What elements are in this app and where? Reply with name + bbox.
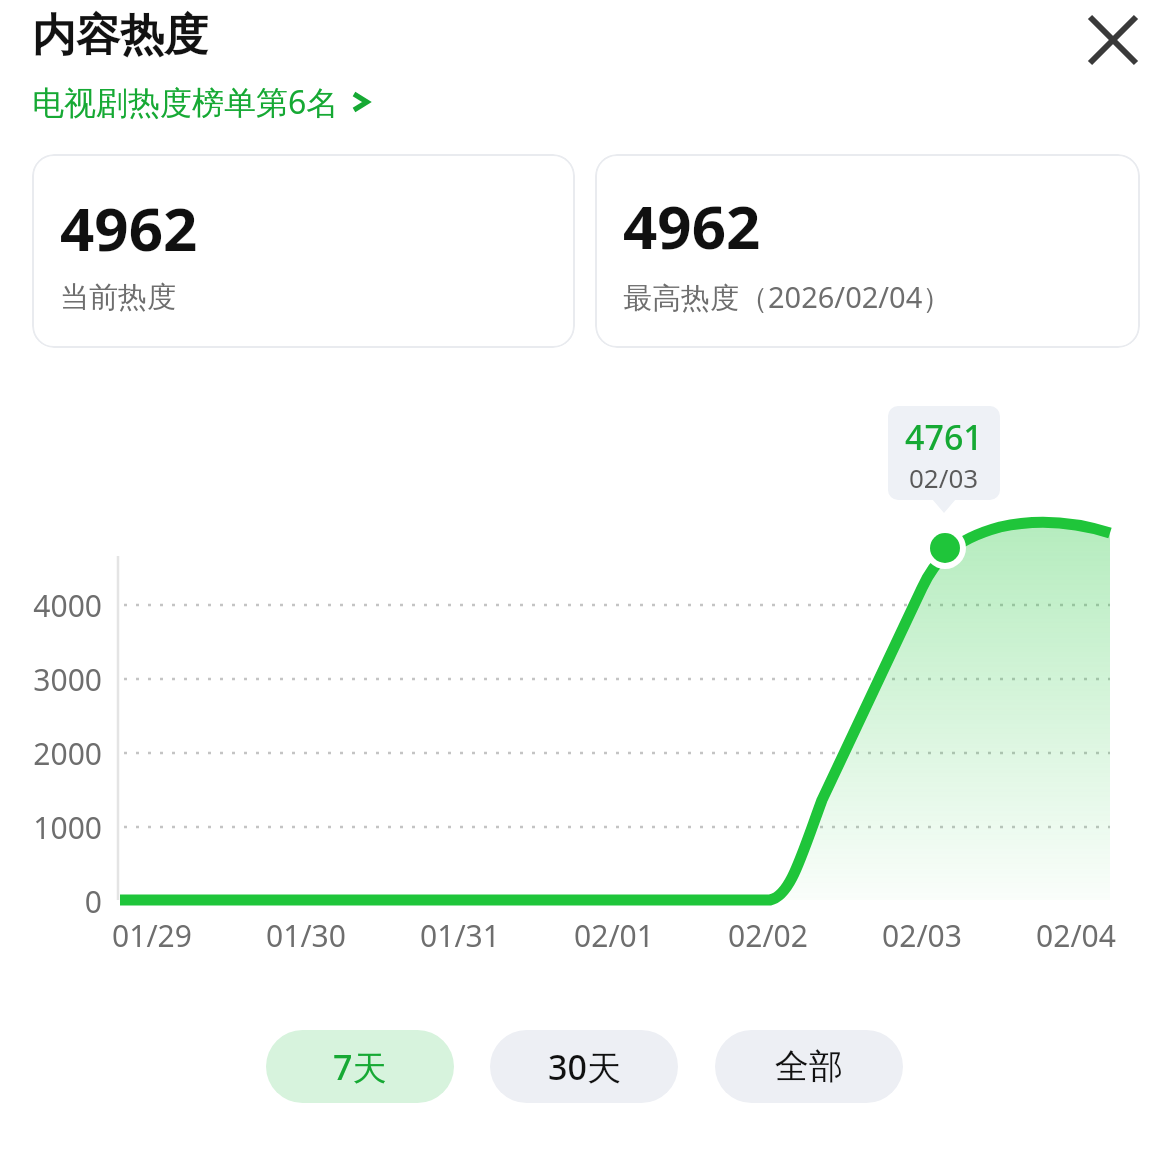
staticText: 7天 <box>333 1044 387 1090</box>
button[interactable]: 30天 <box>490 1030 678 1103</box>
staticText: 内容热度 <box>32 8 208 63</box>
button[interactable]: 4962 <box>32 154 575 348</box>
staticText: 01/30 <box>231 915 381 956</box>
staticText: 02/02 <box>693 915 843 956</box>
staticText: 4962 <box>623 185 761 267</box>
staticText: 全部 <box>775 1045 843 1088</box>
button[interactable]: 电视剧热度榜单第6名 <box>32 80 371 124</box>
button[interactable]: Close <box>1081 8 1145 72</box>
staticText: 30天 <box>548 1044 621 1090</box>
button[interactable]: 7天 <box>266 1030 454 1103</box>
staticText: 0 <box>0 881 102 922</box>
button[interactable]: 内容热度 <box>32 8 208 63</box>
staticText: 02/03 <box>909 460 979 495</box>
staticText: 02/01 <box>539 915 689 956</box>
staticText: 电视剧热度榜单第6名 <box>32 80 339 124</box>
staticText: 4962 <box>60 187 198 269</box>
staticText: 01/29 <box>77 915 227 956</box>
button[interactable]: 全部 <box>715 1030 903 1103</box>
staticText: 4000 <box>0 585 102 626</box>
staticText: 02/04 <box>1001 915 1151 956</box>
staticText: 当前热度 <box>60 279 176 316</box>
staticText: 3000 <box>0 659 102 700</box>
staticText: 01/31 <box>385 915 535 956</box>
staticText: 最高热度（2026/02/04） <box>623 277 952 317</box>
staticText: 2000 <box>0 733 102 774</box>
staticText: 02/03 <box>847 915 997 956</box>
button[interactable]: 4962 <box>595 154 1140 348</box>
staticText: 4761 <box>905 414 983 460</box>
staticText: 1000 <box>0 807 102 848</box>
